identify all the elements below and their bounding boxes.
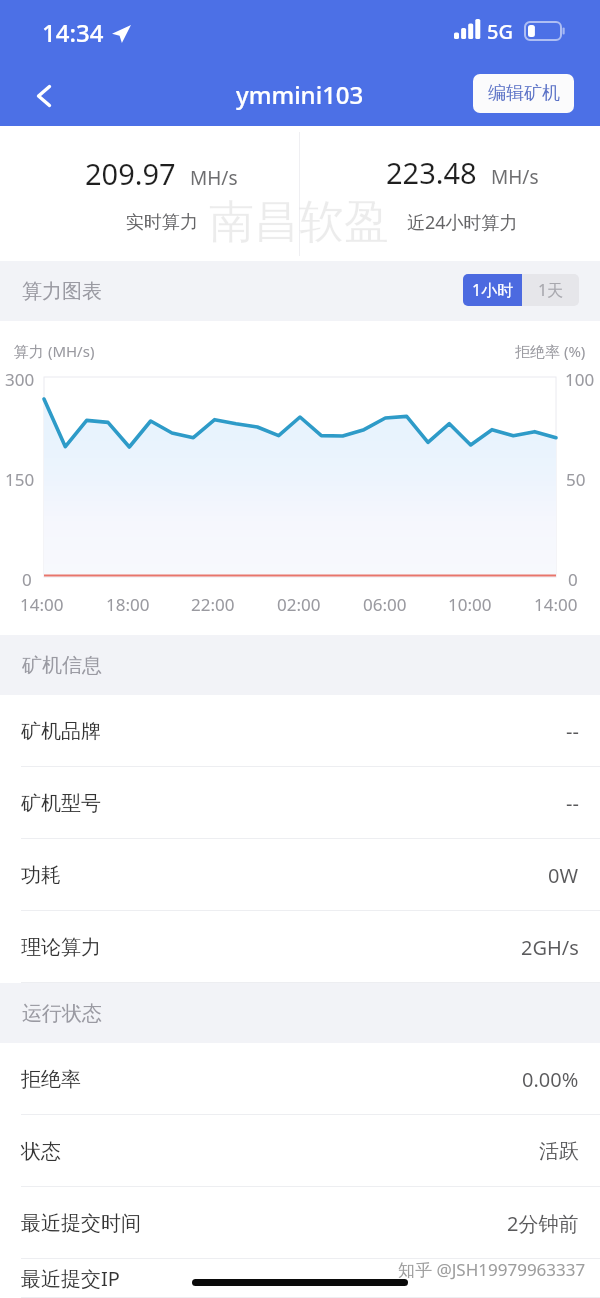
button[interactable]: 理论算力 bbox=[0, 911, 600, 983]
button[interactable]: 矿机品牌 bbox=[0, 695, 600, 767]
staticText: 矿机品牌 bbox=[21, 719, 101, 744]
staticText: 14:00 bbox=[534, 593, 578, 616]
staticText: 南昌软盈 bbox=[209, 194, 389, 251]
staticText: 06:00 bbox=[363, 593, 407, 616]
button[interactable]: 1天 bbox=[522, 274, 579, 306]
button[interactable]: 最近提交时间 bbox=[0, 1187, 600, 1259]
staticText: 活跃 bbox=[539, 1139, 579, 1164]
staticText: 运行状态 bbox=[22, 1001, 102, 1026]
staticText: ymmini103 bbox=[236, 78, 364, 111]
staticText: 150 bbox=[5, 468, 35, 491]
staticText: 状态 bbox=[21, 1139, 61, 1164]
button[interactable]: 编辑矿机 bbox=[473, 74, 574, 113]
staticText: 拒绝率 (%) bbox=[515, 341, 586, 361]
staticText: 最近提交IP bbox=[21, 1265, 120, 1292]
staticText: 近24小时算力 bbox=[407, 210, 518, 235]
staticText: 算力图表 bbox=[22, 279, 102, 304]
button[interactable]: Back bbox=[16, 71, 62, 117]
staticText: 10:00 bbox=[448, 593, 492, 616]
staticText: 实时算力 bbox=[126, 211, 198, 234]
button[interactable]: 拒绝率 bbox=[0, 1043, 600, 1115]
staticText: 拒绝率 bbox=[21, 1067, 81, 1092]
staticText: MH/s bbox=[190, 165, 238, 191]
staticText: 300 bbox=[5, 368, 35, 391]
staticText: 14:34 bbox=[42, 16, 104, 49]
staticText: 22:00 bbox=[191, 593, 235, 616]
staticText: 0W bbox=[548, 862, 579, 889]
staticText: 矿机型号 bbox=[21, 791, 101, 816]
staticText: 209.97 bbox=[85, 154, 176, 193]
staticText: 知乎 @JSH19979963337 bbox=[398, 1258, 586, 1281]
staticText: 0 bbox=[568, 568, 578, 591]
button[interactable]: 状态 bbox=[0, 1115, 600, 1187]
staticText: 矿机信息 bbox=[22, 653, 102, 678]
staticText: MH/s bbox=[491, 164, 539, 190]
staticText: 1天 bbox=[538, 279, 564, 301]
staticText: 2分钟前 bbox=[507, 1210, 579, 1237]
staticText: 0.00% bbox=[522, 1066, 579, 1093]
button[interactable]: 矿机型号 bbox=[0, 767, 600, 839]
staticText: 14:00 bbox=[20, 593, 64, 616]
staticText: 2GH/s bbox=[521, 934, 579, 961]
staticText: 223.48 bbox=[386, 153, 477, 192]
staticText: 0 bbox=[22, 568, 32, 591]
button[interactable]: 最近提交IP bbox=[0, 1259, 600, 1298]
staticText: -- bbox=[566, 790, 579, 817]
staticText: 功耗 bbox=[21, 863, 61, 888]
staticText: 1小时 bbox=[472, 279, 514, 301]
staticText: 50 bbox=[566, 468, 586, 491]
staticText: 算力 (MH/s) bbox=[14, 341, 95, 361]
button[interactable]: 功耗 bbox=[0, 839, 600, 911]
staticText: 5G bbox=[487, 18, 513, 45]
staticText: -- bbox=[566, 718, 579, 745]
staticText: 最近提交时间 bbox=[21, 1211, 141, 1236]
button[interactable]: 1小时 bbox=[463, 274, 522, 306]
staticText: 02:00 bbox=[277, 593, 321, 616]
staticText: 100 bbox=[565, 368, 595, 391]
staticText: 18:00 bbox=[106, 593, 150, 616]
staticText: 编辑矿机 bbox=[488, 82, 560, 105]
staticText: 理论算力 bbox=[21, 935, 101, 960]
